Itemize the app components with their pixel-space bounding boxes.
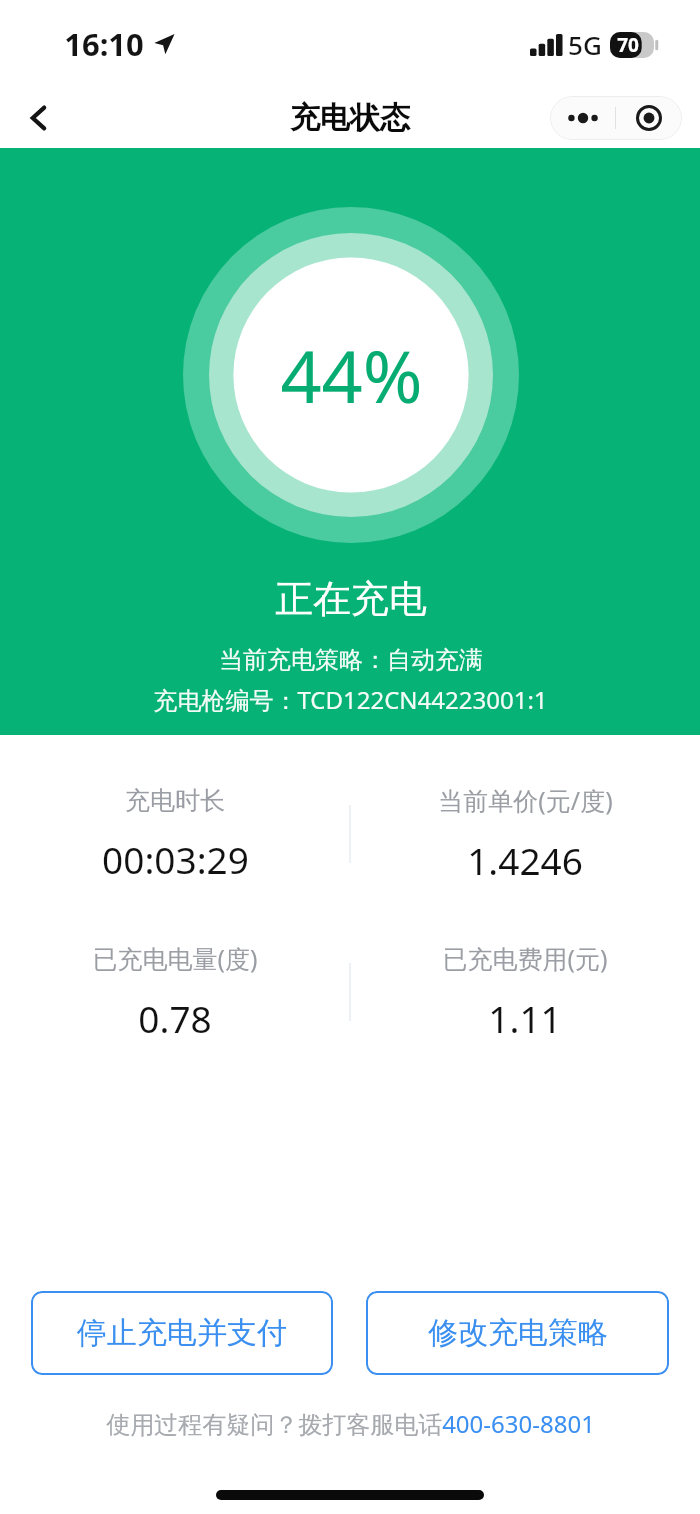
staticText: 1.4246 [467, 835, 583, 885]
staticText: 正在充电 [275, 575, 427, 623]
staticText: 44% [280, 326, 423, 424]
button[interactable]: 停止充电并支付 [31, 1291, 333, 1375]
button[interactable]: More [550, 96, 615, 140]
staticText: 00:03:29 [102, 834, 249, 884]
staticText: 16:10 [64, 23, 144, 65]
staticText: 修改充电策略 [428, 1314, 608, 1352]
staticText: 已充电电量(度) [92, 941, 258, 975]
button[interactable]: Back [14, 93, 64, 143]
staticText: 停止充电并支付 [77, 1314, 287, 1352]
button[interactable]: 使用过程有疑问？拨打客服电话400-630-8801 [94, 1403, 607, 1444]
staticText: 充电时长 [125, 785, 225, 816]
staticText: 当前单价(元/度) [438, 783, 613, 817]
staticText: 5G [568, 27, 602, 62]
staticText: 充电枪编号：TCD122CN44223001:1 [153, 683, 548, 716]
staticText: 使用过程有疑问？拨打客服电话400-630-8801 [106, 1407, 595, 1440]
button[interactable]: 修改充电策略 [366, 1291, 669, 1375]
staticText: 1.11 [488, 993, 562, 1043]
staticText: 当前充电策略：自动充满 [219, 645, 483, 675]
staticText: 70 [617, 32, 639, 58]
staticText: 已充电费用(元) [442, 941, 608, 975]
staticText: 0.78 [138, 993, 212, 1043]
button[interactable]: Close [616, 96, 682, 140]
staticText: 充电状态 [290, 99, 410, 137]
